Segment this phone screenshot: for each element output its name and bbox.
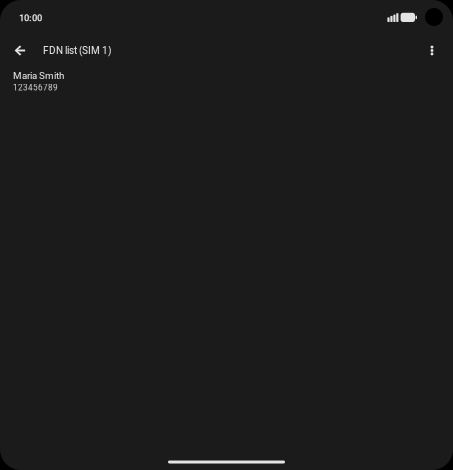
staticText: Maria Smith (13, 70, 64, 81)
button[interactable]: Back (8, 36, 32, 64)
staticText: 10:00 (19, 13, 42, 23)
staticText: 123456789 (13, 83, 58, 92)
staticText: FDN list (SIM 1) (43, 45, 111, 56)
button[interactable]: More options (421, 36, 443, 64)
button[interactable]: Maria Smith (0, 65, 453, 98)
